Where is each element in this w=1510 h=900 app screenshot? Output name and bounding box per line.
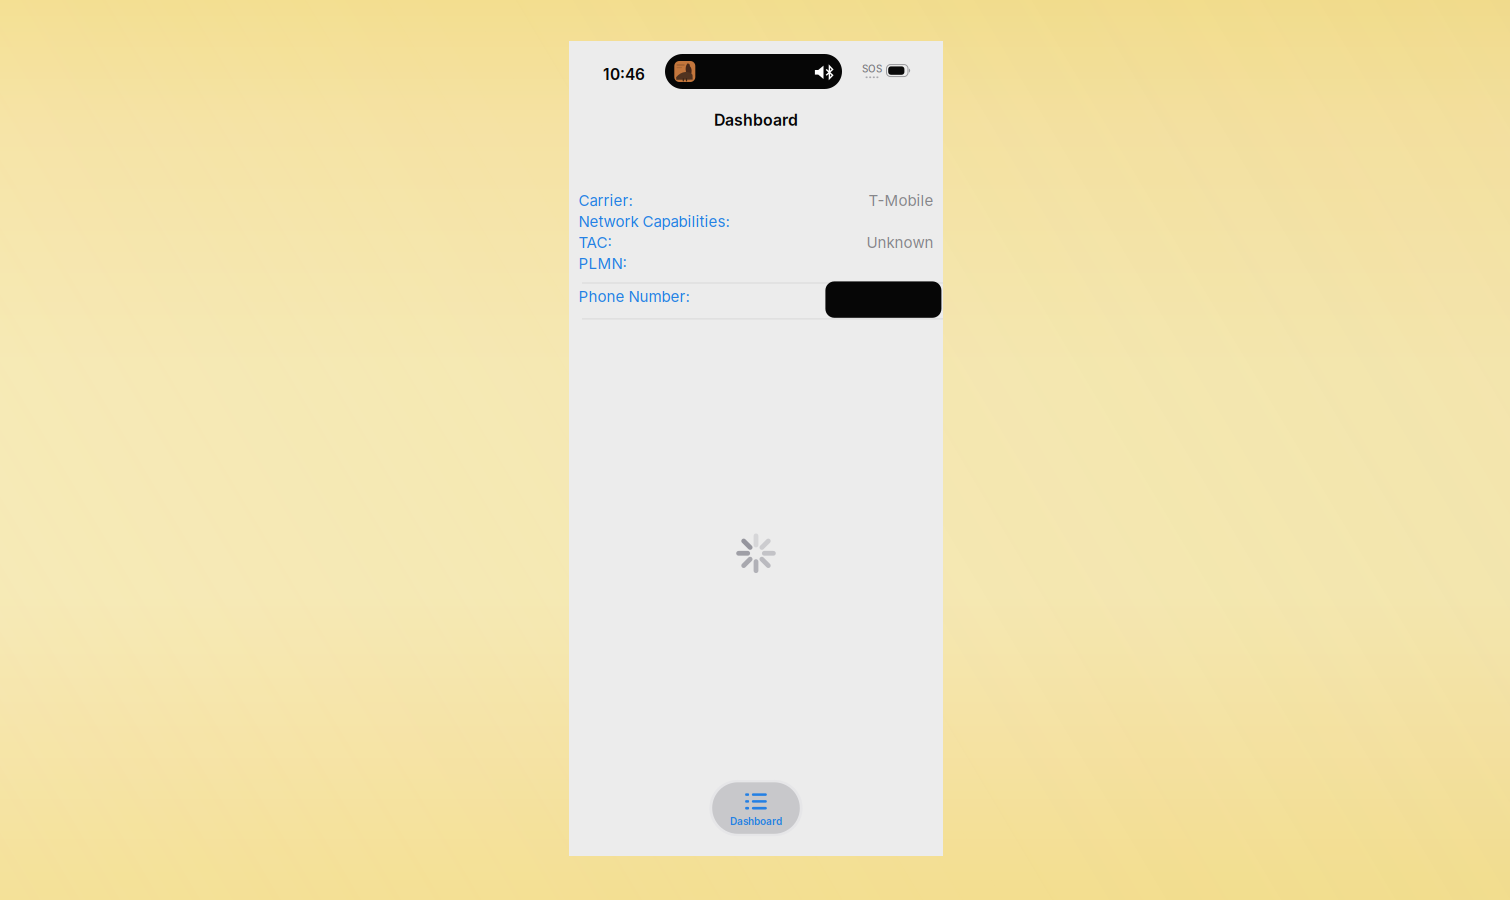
staticText: TAC: [578, 233, 611, 252]
staticText: 10:46 [603, 65, 645, 84]
staticText: SOS [862, 63, 882, 75]
staticText: Network Capabilities: [578, 212, 729, 231]
button[interactable]: Phone Number: [582, 282, 943, 320]
staticText: Phone Number: [578, 287, 689, 306]
staticText: Dashboard [714, 110, 798, 130]
button[interactable]: Dashboard tab [709, 780, 803, 836]
staticText: PLMN: [578, 254, 626, 273]
staticText: Carrier: [578, 191, 632, 210]
staticText: Dashboard [730, 815, 782, 827]
staticText: T-Mobile [868, 191, 933, 210]
staticText: Unknown [866, 233, 933, 252]
